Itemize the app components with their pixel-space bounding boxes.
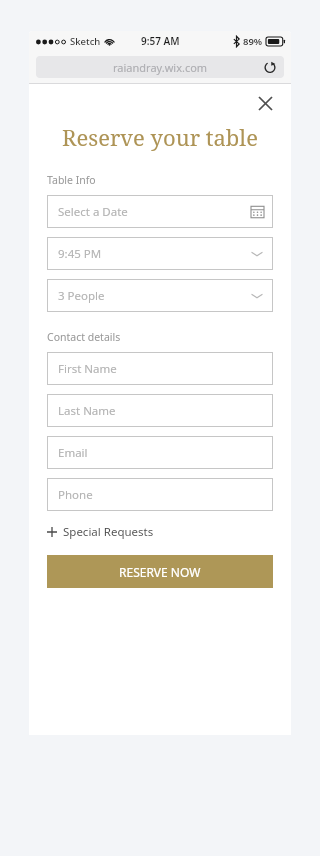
button[interactable]: First Name (47, 352, 273, 385)
button[interactable]: Reload (263, 60, 277, 74)
staticText: Last Name (58, 403, 116, 419)
button[interactable]: raiandray.wix.com (36, 56, 284, 78)
staticText: Table Info (47, 173, 96, 187)
staticText: 9:45 PM (58, 246, 102, 262)
button[interactable]: Special Requests (47, 522, 154, 542)
staticText: 9:57 AM (141, 34, 180, 48)
staticText: Phone (58, 487, 93, 503)
staticText: 89% (243, 35, 263, 48)
button[interactable]: RESERVE NOW (47, 555, 273, 588)
staticText: RESERVE NOW (119, 564, 201, 580)
staticText: 3 People (58, 288, 105, 304)
staticText: Contact details (47, 330, 121, 344)
button[interactable]: Close (252, 90, 278, 116)
staticText: Sketch (70, 35, 101, 48)
button[interactable]: 3 People (47, 279, 273, 312)
staticText: Email (58, 445, 88, 461)
button[interactable]: Select a Date (47, 195, 273, 228)
staticText: raiandray.wix.com (113, 60, 208, 75)
staticText: Reserve your table (29, 122, 291, 152)
button[interactable]: Last Name (47, 394, 273, 427)
button[interactable]: Email (47, 436, 273, 469)
staticText: Special Requests (63, 524, 154, 540)
button[interactable]: Phone (47, 478, 273, 511)
staticText: Select a Date (58, 204, 128, 220)
staticText: First Name (58, 361, 117, 377)
button[interactable]: 9:45 PM (47, 237, 273, 270)
